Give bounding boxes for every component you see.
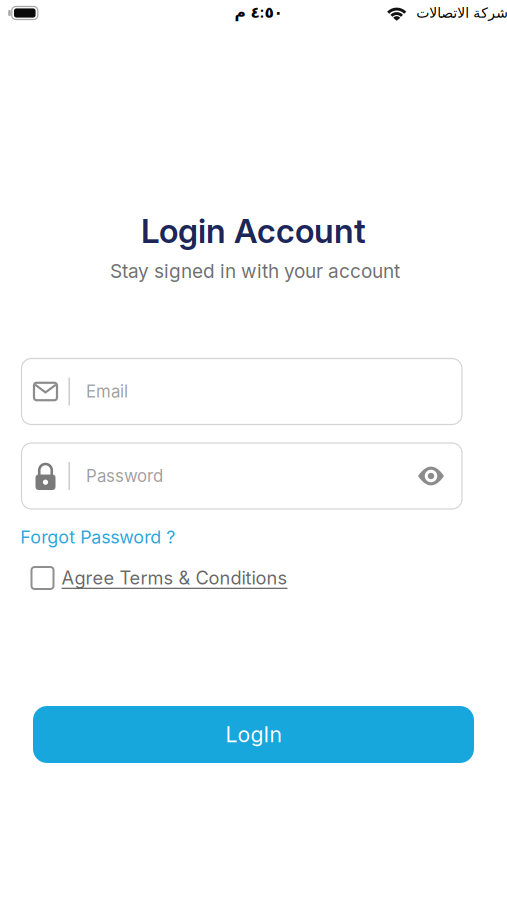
button[interactable]: LogIn <box>33 706 474 763</box>
staticText: شركة الاتصالات <box>416 5 507 21</box>
staticText: Email <box>86 381 128 402</box>
staticText: ٤:٥٠ م <box>234 3 282 21</box>
button[interactable]: Email <box>21 358 462 424</box>
staticText: Forgot Password ? <box>20 526 175 548</box>
button[interactable]: Password <box>21 443 462 509</box>
staticText: Password <box>86 466 163 486</box>
button[interactable] <box>418 468 462 483</box>
staticText: Agree Terms & Conditions <box>61 567 287 589</box>
staticText: Login Account <box>141 211 366 251</box>
button[interactable]: Agree Terms & Conditions <box>31 567 475 589</box>
staticText: LogIn <box>225 722 281 747</box>
staticText: Stay signed in with your account <box>110 259 400 282</box>
button[interactable]: Forgot Password ? <box>0 526 507 548</box>
